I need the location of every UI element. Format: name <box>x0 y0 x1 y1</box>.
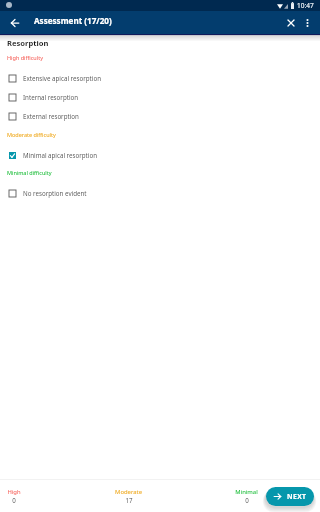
staticText: Assessment (17/20) <box>34 15 112 26</box>
button[interactable]: Internal resorption <box>0 88 320 107</box>
staticText: Minimal difficulty <box>7 169 52 176</box>
button[interactable]: External resorption <box>0 107 320 126</box>
button[interactable]: Close <box>282 14 300 32</box>
staticText: 17 <box>125 496 133 504</box>
button[interactable]: Back <box>3 11 27 34</box>
button[interactable]: No resorption evident <box>0 184 320 203</box>
staticText: No resorption evident <box>23 189 87 197</box>
staticText: Resorption <box>7 38 49 48</box>
staticText: Minimal apical resorption <box>23 151 97 159</box>
button[interactable]: More options <box>298 13 317 32</box>
staticText: External resorption <box>23 112 79 120</box>
staticText: Moderate difficulty <box>7 131 56 138</box>
staticText: High difficulty <box>7 54 43 61</box>
staticText: NEXT <box>287 492 307 501</box>
staticText: Moderate <box>115 488 142 496</box>
button[interactable]: Extensive apical resorption <box>0 69 320 88</box>
staticText: 0 <box>12 496 16 504</box>
staticText: 10:47 <box>297 1 314 10</box>
staticText: 0 <box>245 496 249 504</box>
staticText: Extensive apical resorption <box>23 74 101 82</box>
staticText: Minimal <box>235 488 258 496</box>
button[interactable]: NEXT <box>266 487 314 506</box>
button[interactable]: Minimal apical resorption <box>0 146 320 165</box>
staticText: Internal resorption <box>23 93 79 101</box>
staticText: High <box>7 488 21 496</box>
